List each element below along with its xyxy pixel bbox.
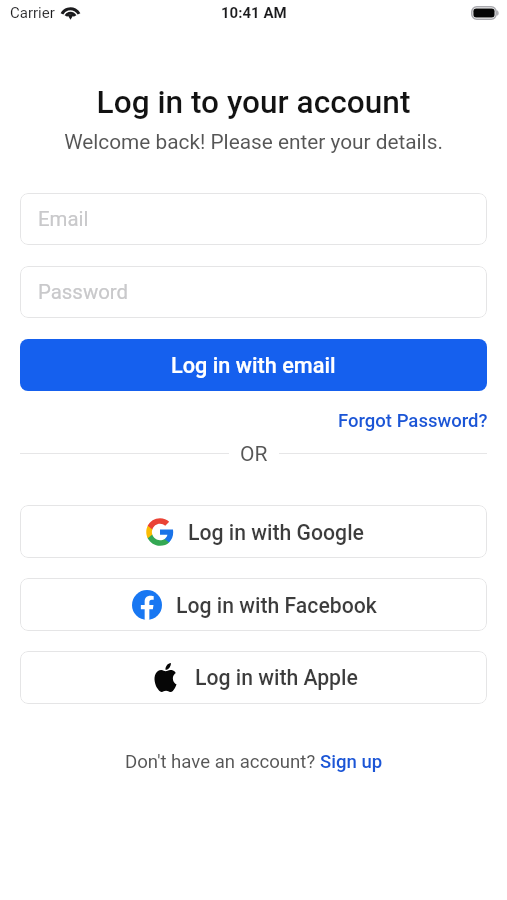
staticText: OR xyxy=(240,442,268,467)
button[interactable]: Password xyxy=(20,266,487,318)
staticText: Log in with Apple xyxy=(195,665,358,690)
staticText: Log in with Facebook xyxy=(176,593,377,618)
staticText: Email xyxy=(38,207,89,231)
button[interactable]: Forgot Password? xyxy=(338,410,488,432)
staticText: Forgot Password? xyxy=(338,410,488,432)
staticText: Log in with email xyxy=(171,353,336,378)
staticText: Log in with Google xyxy=(188,520,364,545)
staticText: Sign up xyxy=(320,751,383,773)
staticText: 10:41 AM xyxy=(221,4,287,22)
staticText: Carrier xyxy=(10,4,55,22)
button[interactable]: Log in with email xyxy=(20,339,487,391)
button[interactable]: Sign up xyxy=(320,751,383,773)
button[interactable]: Log in with Facebook xyxy=(20,578,487,631)
button[interactable]: Email xyxy=(20,193,487,245)
staticText: Don't have an account? xyxy=(125,751,320,773)
staticText: Password xyxy=(38,280,129,304)
staticText: Log in to your account xyxy=(0,84,507,121)
button[interactable]: Log in with Google xyxy=(20,505,487,558)
button[interactable]: Log in with Apple xyxy=(20,651,487,704)
staticText: Welcome back! Please enter your details. xyxy=(0,130,507,154)
